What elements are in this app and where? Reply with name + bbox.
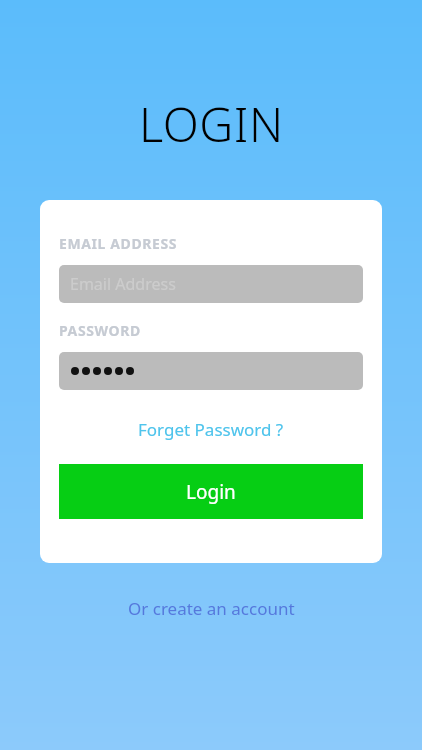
button[interactable]: Forget Password ? (132, 414, 290, 445)
staticText: PASSWORD (59, 321, 141, 340)
staticText: Forget Password ? (138, 418, 284, 441)
staticText: LOGIN (139, 92, 284, 156)
button[interactable]: Email Address (59, 265, 363, 303)
staticText: Or create an account (128, 597, 295, 620)
button[interactable]: Login (59, 464, 363, 519)
staticText: EMAIL ADDRESS (59, 234, 178, 253)
button[interactable] (59, 352, 363, 390)
staticText: Login (186, 479, 236, 505)
staticText: Email Address (70, 273, 176, 295)
button[interactable]: Or create an account (120, 592, 303, 625)
